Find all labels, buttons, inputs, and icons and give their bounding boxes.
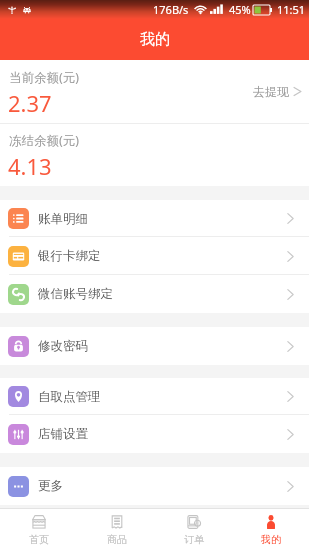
staticText: 当前余额(元) (9, 69, 80, 86)
staticText: 我的 (140, 30, 170, 49)
staticText: 订单 (184, 533, 204, 546)
button[interactable]: 当前余额(元) (0, 60, 309, 123)
button[interactable]: 商品 (78, 509, 155, 550)
other: USB (8, 6, 16, 14)
staticText: 更多 (38, 478, 63, 494)
button[interactable]: 首页 (0, 509, 78, 550)
staticText: 修改密码 (38, 338, 88, 354)
button[interactable]: 修改密码 (0, 327, 309, 365)
staticText: 4.13 (8, 151, 52, 181)
staticText: 2.37 (8, 88, 52, 118)
button[interactable]: 账单明细 (0, 200, 309, 237)
staticText: 商品 (107, 533, 127, 546)
button[interactable]: 自取点管理 (0, 378, 309, 415)
staticText: 11:51 (277, 2, 306, 17)
button[interactable]: 我的 (232, 509, 309, 550)
staticText: 店铺设置 (38, 426, 88, 442)
staticText: 微信账号绑定 (38, 286, 113, 302)
staticText: 45% (229, 2, 251, 17)
staticText: 176B/s (153, 2, 189, 17)
staticText: 自取点管理 (38, 389, 101, 405)
button[interactable]: 微信账号绑定 (0, 275, 309, 313)
button[interactable]: 店铺设置 (0, 415, 309, 453)
staticText: 首页 (29, 533, 49, 546)
staticText: 银行卡绑定 (38, 248, 101, 264)
button[interactable]: 银行卡绑定 (0, 237, 309, 275)
staticText: 冻结余额(元) (9, 132, 80, 149)
staticText: 去提现 (253, 84, 289, 99)
staticText: 账单明细 (38, 211, 88, 227)
button[interactable]: 更多 (0, 467, 309, 505)
button[interactable]: 订单 (155, 509, 232, 550)
other: Android (22, 5, 32, 15)
staticText: 我的 (261, 533, 281, 546)
